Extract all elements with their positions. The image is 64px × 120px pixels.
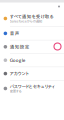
staticText: 変更する bbox=[10, 89, 22, 93]
button[interactable]: すべて通知を受け取る bbox=[0, 10, 64, 26]
staticText: 通知設定 bbox=[10, 44, 30, 49]
button[interactable]: 音声 bbox=[0, 27, 64, 40]
staticText: すべて通知を受け取る bbox=[10, 14, 54, 19]
staticText: Salesforceからの通知 bbox=[10, 19, 42, 23]
button[interactable]: Google bbox=[0, 54, 64, 67]
button[interactable]: アカウント bbox=[0, 67, 64, 80]
staticText: パスワードとセキュリティ bbox=[10, 84, 55, 89]
button[interactable]: More bbox=[58, 5, 60, 7]
button[interactable]: パスワードとセキュリティ bbox=[0, 80, 64, 96]
button[interactable]: 通知設定 bbox=[0, 40, 64, 53]
staticText: 音声 bbox=[10, 31, 20, 36]
staticText: Google bbox=[10, 58, 26, 62]
staticText: アカウント bbox=[10, 71, 29, 76]
